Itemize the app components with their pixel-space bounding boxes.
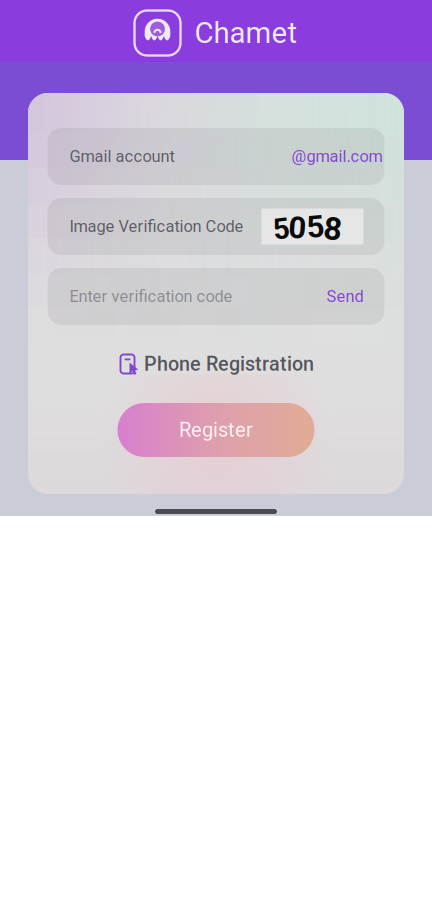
button[interactable]: Send (326, 287, 363, 306)
staticText: 5 (306, 209, 324, 245)
staticText: Chamet (194, 16, 297, 50)
staticText: @gmail.com (291, 147, 382, 166)
staticText: 8 (323, 210, 341, 248)
staticText: Image Verification Code (69, 217, 243, 236)
staticText: 5 (273, 212, 290, 246)
staticText: Gmail account (69, 147, 174, 166)
staticText: Enter verification code (69, 287, 232, 306)
staticText: Phone Registration (144, 352, 314, 375)
button[interactable]: Register (117, 403, 314, 457)
button[interactable]: Phone Registration (118, 353, 314, 375)
staticText: 0 (288, 210, 306, 246)
staticText: Send (326, 287, 363, 306)
staticText: Register (179, 418, 253, 442)
